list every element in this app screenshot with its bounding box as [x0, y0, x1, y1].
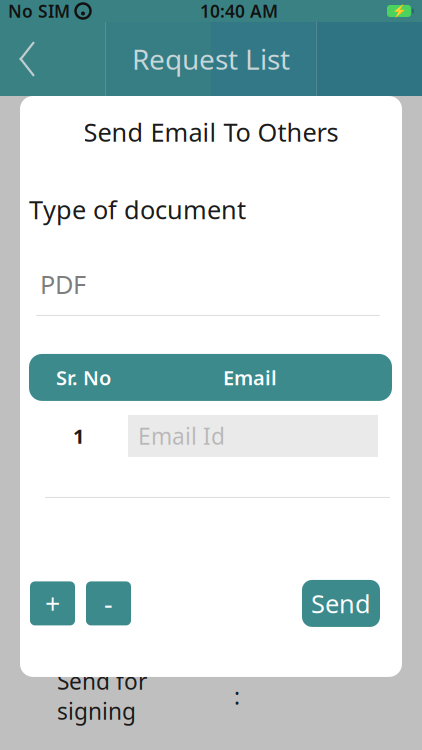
staticText: 1 — [73, 423, 84, 449]
button[interactable]: Send — [302, 580, 380, 627]
staticText: No SIM — [8, 0, 70, 22]
staticText: Send for signing — [57, 666, 147, 726]
staticText: : — [234, 681, 240, 711]
button[interactable]: Email Id — [128, 415, 378, 457]
staticText: Final Copy — [57, 616, 167, 646]
staticText: 10:40 AM — [200, 0, 278, 22]
button[interactable]: PDF — [20, 226, 402, 316]
staticText: Email — [223, 364, 277, 391]
staticText: + — [45, 586, 60, 621]
staticText: Send — [311, 587, 371, 620]
staticText: Sr. No — [56, 364, 111, 391]
staticText: PDF — [40, 267, 86, 301]
staticText: Request List — [132, 40, 290, 78]
staticText: ⚡ — [391, 4, 406, 18]
staticText: Type of document — [29, 193, 246, 226]
staticText: Send Email To Others — [83, 115, 338, 149]
button[interactable]: - — [86, 581, 131, 625]
staticText: - — [104, 586, 113, 621]
staticText: Email Id — [138, 421, 225, 451]
button[interactable]: + — [30, 581, 75, 625]
button[interactable]: Back — [0, 29, 54, 89]
